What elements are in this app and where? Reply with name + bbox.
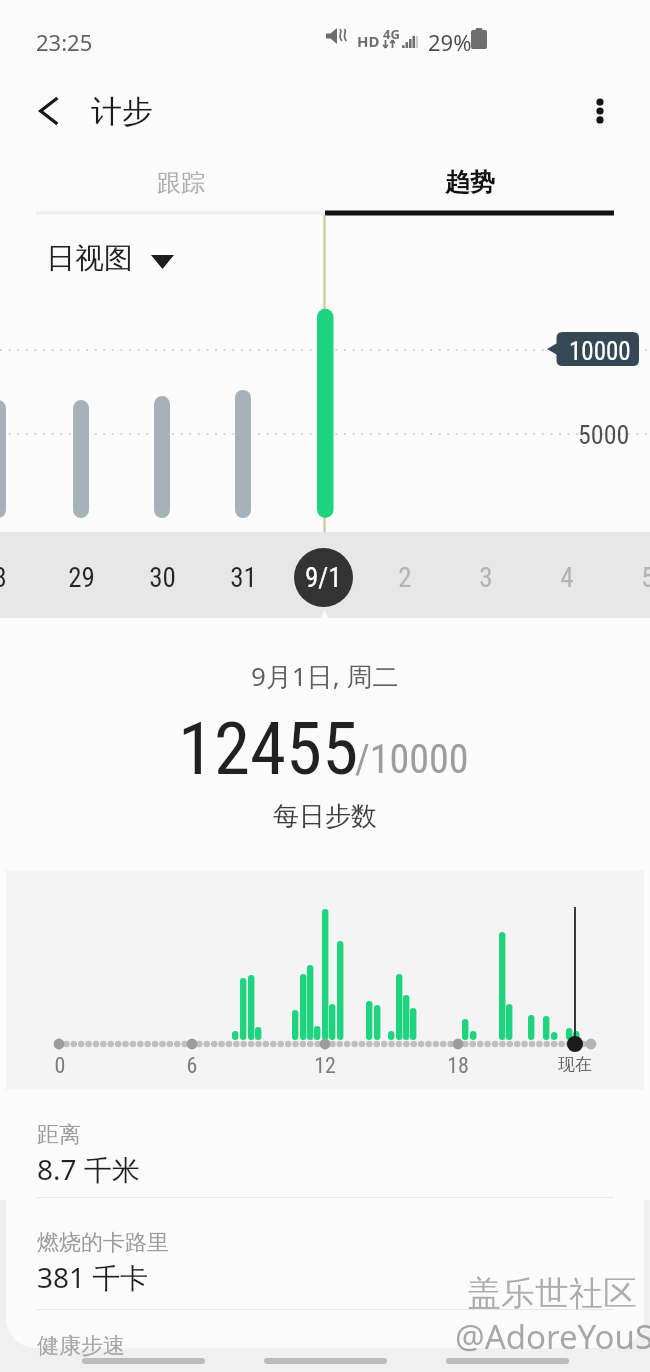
button[interactable]: 趋势	[325, 152, 614, 213]
button[interactable]: 跟踪	[36, 152, 325, 213]
staticText: 趋势	[445, 167, 495, 198]
staticText: 4	[560, 562, 574, 594]
button[interactable]: 2	[370, 535, 440, 621]
staticText: 29	[68, 562, 95, 594]
button[interactable]: 4	[532, 535, 602, 621]
staticText: @AdoreYouS	[455, 1314, 650, 1359]
button[interactable]: Navigation button	[82, 1358, 205, 1364]
button[interactable]: Back	[22, 84, 76, 138]
staticText: 23:25	[36, 27, 93, 57]
button[interactable]: 日视图	[42, 236, 178, 281]
staticText: 12455	[178, 706, 359, 792]
staticText: 31	[230, 562, 257, 594]
staticText: 30	[149, 562, 176, 594]
staticText: 381 千卡	[37, 1258, 149, 1296]
staticText: 4G	[383, 25, 400, 43]
staticText: 8.7 千米	[37, 1150, 140, 1188]
staticText: 跟踪	[157, 168, 205, 198]
staticText: 18	[413, 1053, 503, 1079]
staticText: 2	[398, 562, 412, 594]
staticText: 0	[15, 1053, 105, 1079]
staticText: 距离	[37, 1121, 81, 1149]
button[interactable]: 30	[127, 535, 197, 621]
button[interactable]: 距离	[0, 1099, 650, 1199]
staticText: 计步	[91, 92, 153, 131]
staticText: 健康步速	[37, 1332, 125, 1360]
button[interactable]: 5	[613, 535, 650, 621]
button[interactable]: 燃烧的卡路里	[0, 1207, 650, 1307]
staticText: 燃烧的卡路里	[37, 1229, 169, 1257]
staticText: 9/1	[305, 562, 342, 594]
staticText: 10000	[569, 337, 631, 366]
button[interactable]: 29	[46, 535, 116, 621]
staticText: 盖乐世社区	[467, 1272, 637, 1315]
staticText: 5000	[578, 420, 630, 450]
staticText: 6	[147, 1053, 237, 1079]
button[interactable]: More options	[573, 84, 627, 138]
staticText: 12	[280, 1053, 370, 1079]
button[interactable]: Navigation button	[446, 1358, 569, 1364]
staticText: 现在	[530, 1054, 620, 1075]
button[interactable]: 3	[451, 535, 521, 621]
button[interactable]: Navigation button	[264, 1358, 387, 1364]
button[interactable]: 8	[0, 535, 35, 621]
staticText: 3	[479, 562, 493, 594]
button[interactable]: 健康步速	[0, 1310, 650, 1370]
staticText: /10000	[355, 736, 469, 783]
staticText: 每日步数	[273, 800, 377, 833]
button[interactable]: 31	[208, 535, 278, 621]
staticText: 29%	[428, 27, 472, 57]
button[interactable]: 9/1	[294, 548, 353, 607]
staticText: 9月1日, 周二	[251, 658, 399, 694]
staticText: 5	[641, 562, 650, 594]
staticText: 8	[0, 562, 7, 594]
staticText: 日视图	[46, 240, 133, 277]
staticText: HD	[357, 31, 380, 51]
